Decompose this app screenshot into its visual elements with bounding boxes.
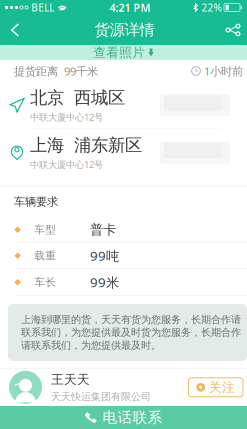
- staticText: 查看照片: [93, 44, 145, 60]
- staticText: 货源详情: [94, 20, 154, 40]
- staticText: 4:21 PM: [109, 0, 150, 15]
- staticText: 车辆要求: [14, 195, 58, 209]
- staticText: 提货距离 99千米: [14, 63, 98, 79]
- button[interactable]: 关注: [188, 378, 243, 397]
- staticText: 中联大厦中心12号: [30, 111, 103, 123]
- button[interactable]: 分享: [219, 15, 247, 45]
- staticText: 天天快运集团有限公司: [51, 390, 151, 403]
- staticText: 北京: [30, 87, 64, 109]
- staticText: 车长: [34, 275, 56, 289]
- staticText: 载重: [34, 249, 56, 262]
- staticText: 上海: [30, 134, 64, 156]
- staticText: 关注: [209, 379, 235, 395]
- staticText: 普卡: [90, 221, 116, 238]
- staticText: 西城区: [74, 87, 125, 109]
- staticText: 99米: [90, 273, 119, 291]
- staticText: 王天天: [51, 371, 90, 387]
- staticText: 22%: [201, 1, 221, 14]
- staticText: 电话联系: [102, 408, 162, 427]
- staticText: 中联大厦中心12号: [30, 158, 103, 171]
- staticText: 车型: [34, 223, 56, 236]
- button[interactable]: 查看照片: [0, 45, 247, 60]
- staticText: 浦东新区: [74, 134, 142, 156]
- staticText: 上海到哪里的货，天天有货为您服务，长期合作请联系我们，为您提供最及时货为您服务，…: [21, 313, 241, 352]
- staticText: BELL: [31, 1, 54, 14]
- button[interactable]: 返回: [0, 15, 30, 45]
- button[interactable]: 电话联系: [0, 406, 247, 429]
- staticText: 1小时前: [204, 63, 243, 79]
- staticText: 99吨: [90, 247, 119, 265]
